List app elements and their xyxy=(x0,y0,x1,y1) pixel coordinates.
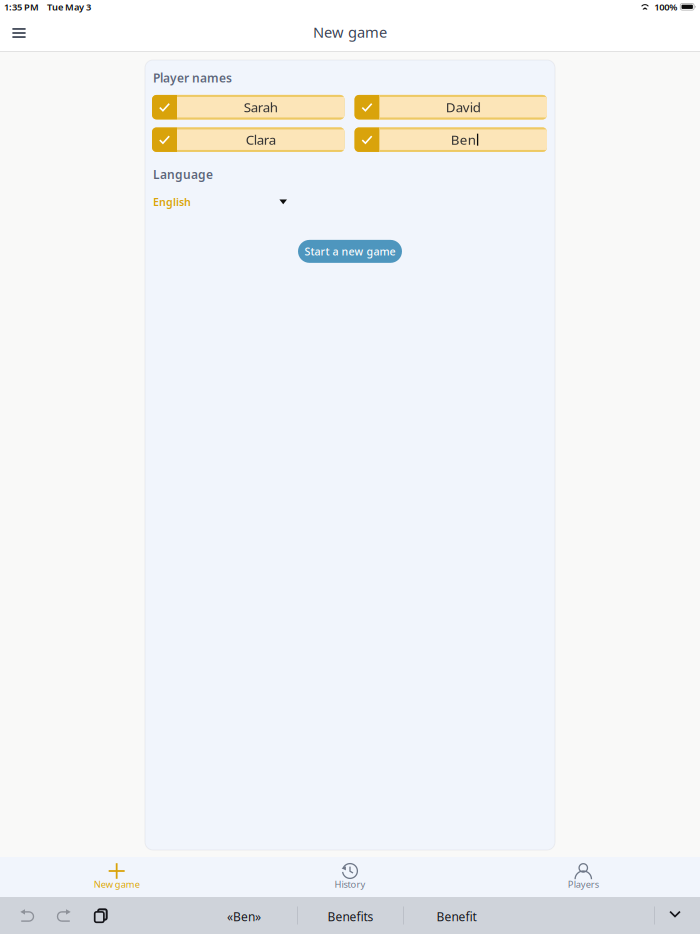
staticText: «Ben» xyxy=(227,908,261,924)
button[interactable]: Paste xyxy=(85,897,117,934)
button[interactable]: Clara xyxy=(152,127,344,152)
staticText: Benefit xyxy=(436,908,476,924)
button[interactable]: Benefits xyxy=(298,897,403,934)
staticText: Start a new game xyxy=(304,244,395,258)
staticText: History xyxy=(334,878,365,890)
button[interactable]: Players xyxy=(467,857,700,897)
staticText: Ben xyxy=(451,131,476,148)
button[interactable]: New game xyxy=(0,857,233,897)
staticText: David xyxy=(446,98,481,116)
button[interactable]: Undo xyxy=(11,897,43,934)
staticText: Benefits xyxy=(327,908,373,924)
staticText: Player names xyxy=(153,70,232,86)
button[interactable]: Ben xyxy=(354,127,547,152)
staticText: Tue May 3 xyxy=(47,1,91,13)
staticText: Sarah xyxy=(244,98,278,116)
button[interactable]: Menu xyxy=(3,18,35,52)
button[interactable]: Start a new game xyxy=(298,240,402,263)
staticText: Players xyxy=(568,878,599,890)
staticText: 1:35 PM xyxy=(4,1,39,13)
button[interactable]: Redo xyxy=(48,897,80,934)
button[interactable]: English xyxy=(153,194,287,210)
button[interactable]: «Ben» xyxy=(191,897,297,934)
staticText: Language xyxy=(153,166,213,182)
button[interactable]: History xyxy=(233,857,467,897)
staticText: Clara xyxy=(246,131,276,148)
button[interactable]: Sarah xyxy=(152,95,344,119)
button[interactable]: Dismiss keyboard xyxy=(659,897,691,934)
button[interactable]: David xyxy=(354,95,547,119)
staticText: New game xyxy=(313,22,387,42)
staticText: 100% xyxy=(654,1,677,13)
button[interactable]: Benefit xyxy=(404,897,509,934)
staticText: New game xyxy=(94,878,140,890)
staticText: English xyxy=(153,195,191,209)
